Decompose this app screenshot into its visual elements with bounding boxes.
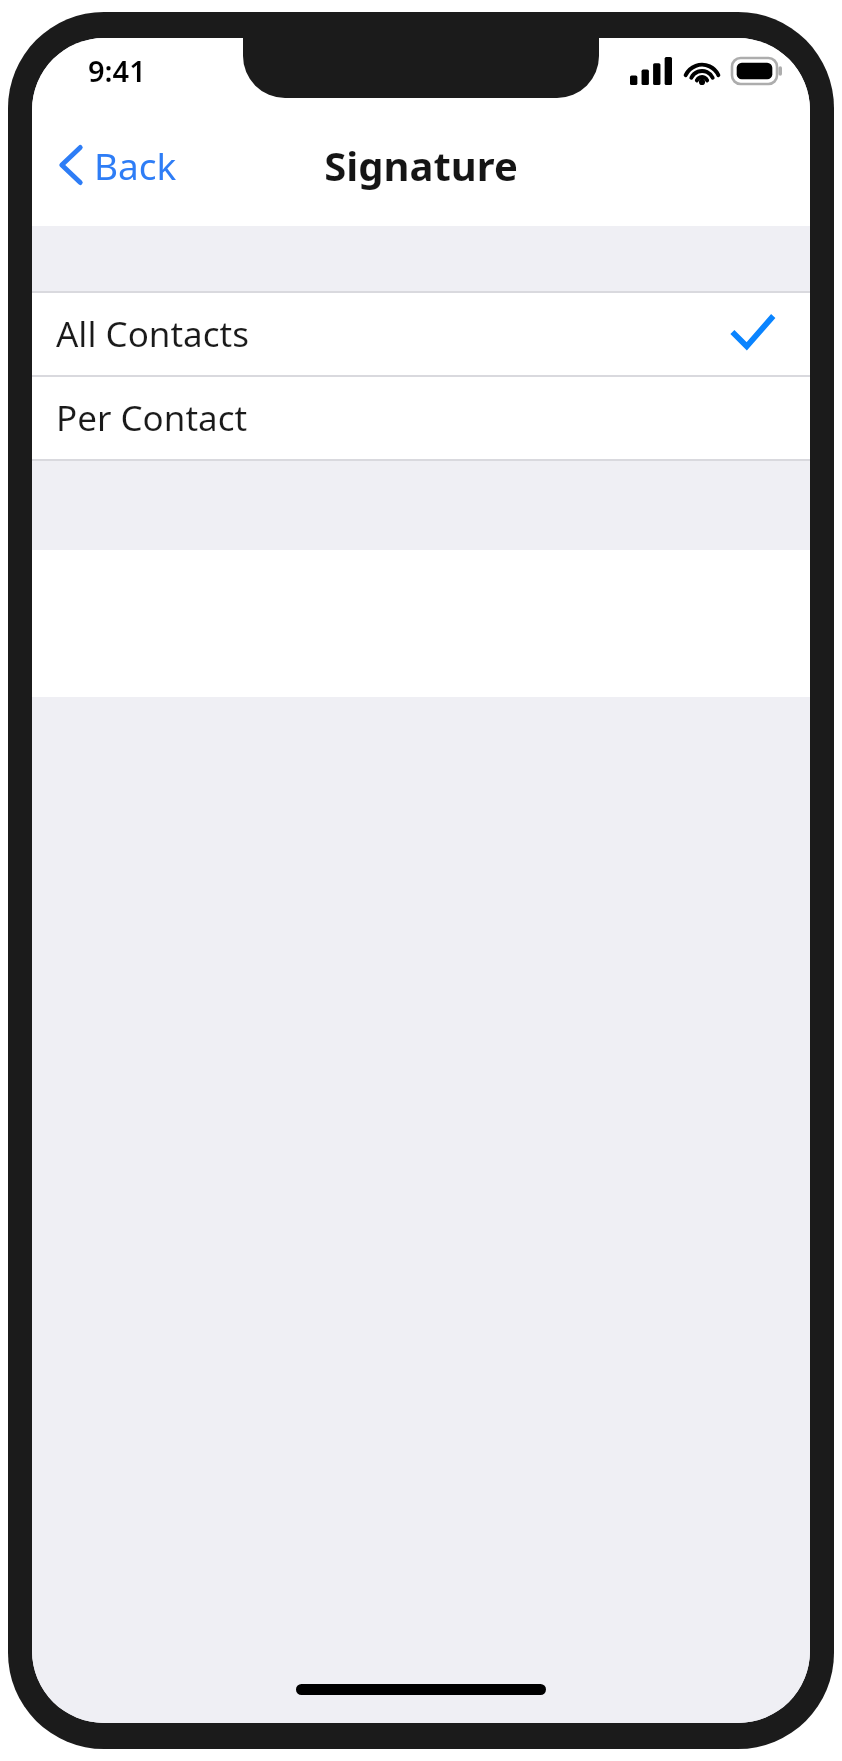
staticText: All Contacts — [56, 310, 249, 358]
staticText: Signature — [324, 138, 518, 192]
button[interactable]: Back — [32, 125, 193, 205]
button[interactable]: Per Contact — [32, 377, 810, 459]
staticText: Back — [94, 140, 177, 190]
other: Back — [60, 145, 82, 185]
button[interactable]: All Contacts — [32, 293, 810, 375]
staticText: 9:41 — [88, 51, 146, 90]
staticText: Per Contact — [56, 394, 248, 442]
